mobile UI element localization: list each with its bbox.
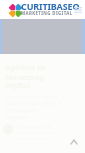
button[interactable]: Open menu: [72, 4, 84, 16]
staticText: CURITIBASEO: [21, 0, 80, 12]
staticText: MARKETING DIGITAL: [21, 10, 73, 16]
staticText: Agência de: [5, 62, 47, 72]
button[interactable]: Back to top: [68, 136, 80, 148]
staticText: Marketing Digital: [5, 72, 63, 90]
